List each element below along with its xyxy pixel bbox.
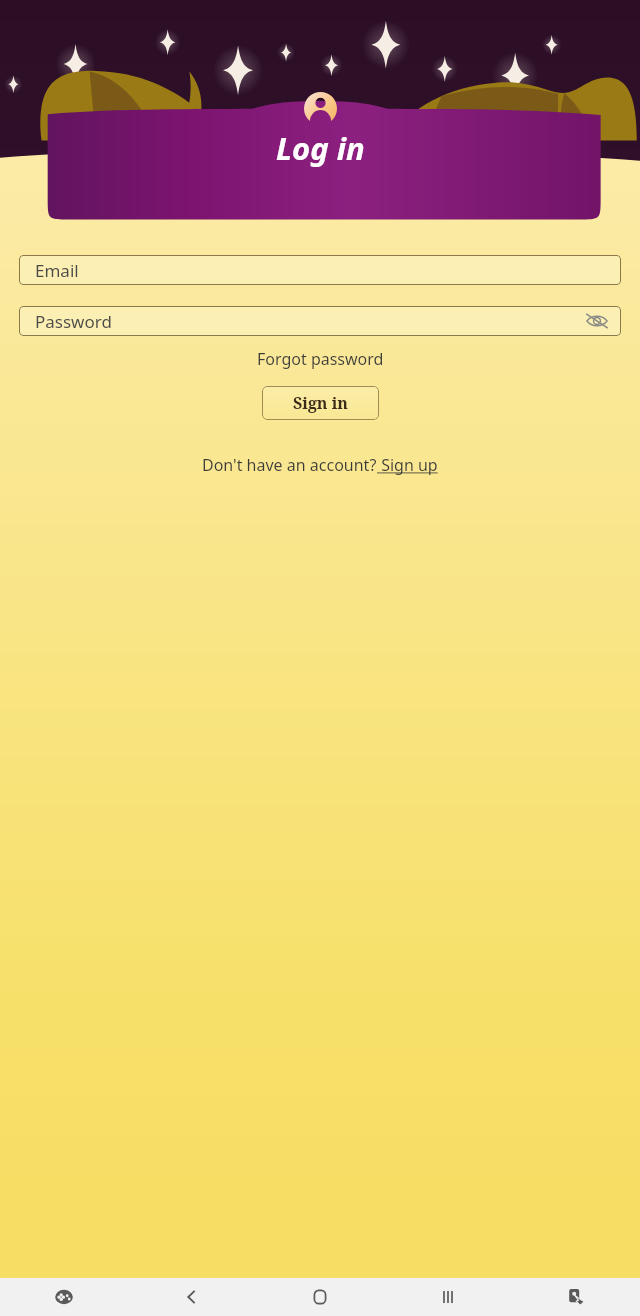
other: Back bbox=[181, 1286, 203, 1308]
button[interactable]: Show password bbox=[585, 309, 609, 333]
button[interactable]: Home bbox=[256, 1278, 384, 1316]
button[interactable]: Forgot password bbox=[247, 345, 394, 373]
staticText: Sign up bbox=[377, 454, 438, 476]
button[interactable]: Email bbox=[19, 255, 621, 285]
button[interactable]: Recent apps bbox=[384, 1278, 512, 1316]
staticText: Log in bbox=[276, 127, 365, 169]
button[interactable]: Sign in bbox=[262, 386, 379, 420]
other: Recent apps bbox=[438, 1287, 458, 1307]
button[interactable]: Password bbox=[19, 306, 621, 336]
staticText: Forgot password bbox=[257, 348, 384, 370]
button[interactable]: Screenshot bbox=[512, 1278, 640, 1316]
other: Screenshot bbox=[566, 1287, 586, 1307]
staticText: Password bbox=[35, 310, 112, 333]
staticText: Don't have an account? bbox=[202, 454, 377, 476]
other: Game tools bbox=[54, 1287, 74, 1307]
staticText: Email bbox=[35, 259, 79, 282]
button[interactable]: Game tools bbox=[0, 1278, 128, 1316]
other: Home bbox=[310, 1287, 330, 1307]
staticText: Sign in bbox=[293, 392, 348, 414]
button[interactable]: Sign up bbox=[377, 454, 438, 476]
button[interactable]: Back bbox=[128, 1278, 256, 1316]
